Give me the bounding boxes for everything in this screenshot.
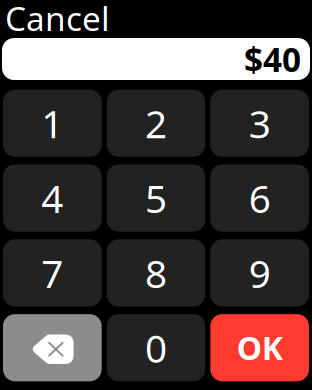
staticText: 8 xyxy=(145,247,167,299)
button[interactable]: 5 xyxy=(107,164,205,232)
button[interactable]: 8 xyxy=(107,239,205,306)
staticText: 6 xyxy=(249,172,271,224)
button[interactable]: 7 xyxy=(3,239,102,306)
button[interactable]: 4 xyxy=(3,164,102,232)
staticText: 4 xyxy=(41,172,63,224)
button[interactable]: 9 xyxy=(210,239,309,306)
staticText: 2 xyxy=(145,97,167,150)
button[interactable]: 0 xyxy=(107,314,205,381)
button[interactable]: Delete xyxy=(3,314,102,381)
button[interactable]: 1 xyxy=(3,90,102,157)
button[interactable]: Cancel xyxy=(4,0,111,43)
staticText: 9 xyxy=(249,247,271,299)
staticText: 7 xyxy=(41,247,63,299)
button[interactable]: 3 xyxy=(210,90,309,157)
button[interactable]: OK xyxy=(210,314,309,381)
staticText: 5 xyxy=(145,172,167,224)
staticText: $40 xyxy=(244,36,301,82)
staticText: 1 xyxy=(41,97,63,150)
button[interactable]: 2 xyxy=(107,90,205,157)
staticText: 3 xyxy=(249,97,271,150)
staticText: Cancel xyxy=(5,0,110,41)
staticText: OK xyxy=(237,326,283,369)
staticText: 0 xyxy=(145,321,167,374)
button[interactable]: 6 xyxy=(210,164,309,232)
